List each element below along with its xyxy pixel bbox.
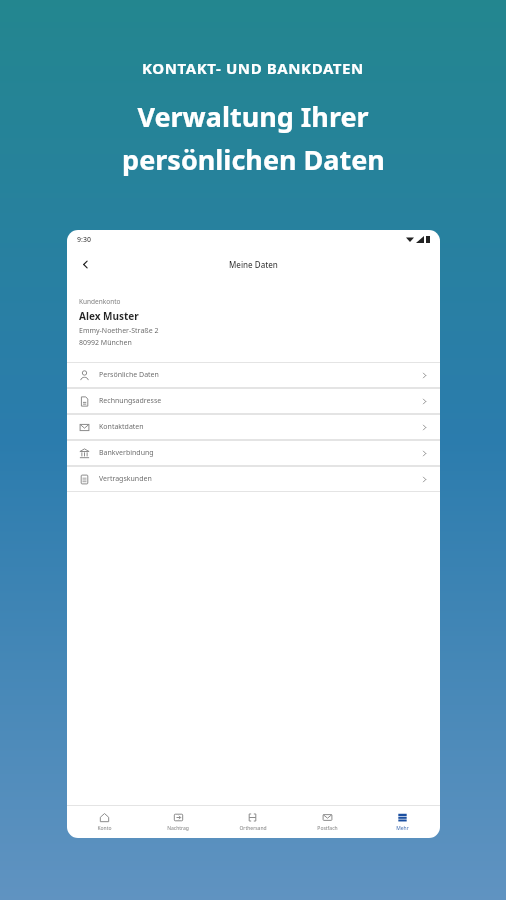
staticText: Orthersand bbox=[239, 825, 267, 832]
button[interactable]: Kontaktdaten bbox=[67, 415, 440, 439]
staticText: Mehr bbox=[396, 825, 409, 832]
button[interactable]: Bankverbindung bbox=[67, 441, 440, 465]
staticText: Kundenkonto bbox=[79, 297, 121, 306]
staticText: Konto bbox=[97, 825, 112, 832]
staticText: KONTAKT- UND BANKDATEN bbox=[142, 58, 364, 78]
staticText: Alex Muster bbox=[79, 309, 139, 323]
staticText: Postfach bbox=[317, 825, 338, 832]
staticText: 9:30 bbox=[77, 235, 91, 245]
button[interactable]: Persönliche Daten bbox=[67, 363, 440, 387]
staticText: Vertragskunden bbox=[99, 474, 152, 484]
button[interactable]: Postfach bbox=[290, 812, 365, 832]
staticText: Persönliche Daten bbox=[99, 370, 159, 380]
staticText: Bankverbindung bbox=[99, 448, 154, 458]
button[interactable]: Rechnungsadresse bbox=[67, 389, 440, 413]
staticText: Emmy-Noether-Straße 2 bbox=[79, 326, 159, 336]
staticText: Kontaktdaten bbox=[99, 422, 144, 432]
staticText: 80992 München bbox=[79, 338, 132, 348]
button[interactable]: Nachtrag bbox=[141, 812, 215, 832]
staticText: persönlichen Daten bbox=[122, 141, 385, 178]
staticText: Verwaltung Ihrer bbox=[137, 98, 369, 135]
button[interactable]: Zurück bbox=[73, 252, 97, 276]
button[interactable]: Mehr bbox=[365, 812, 440, 832]
button[interactable]: Vertragskunden bbox=[67, 467, 440, 491]
staticText: Meine Daten bbox=[229, 259, 278, 270]
button[interactable]: Orthersand bbox=[215, 812, 290, 832]
staticText: Nachtrag bbox=[167, 825, 189, 832]
staticText: Rechnungsadresse bbox=[99, 396, 162, 406]
button[interactable]: Konto bbox=[67, 812, 141, 832]
